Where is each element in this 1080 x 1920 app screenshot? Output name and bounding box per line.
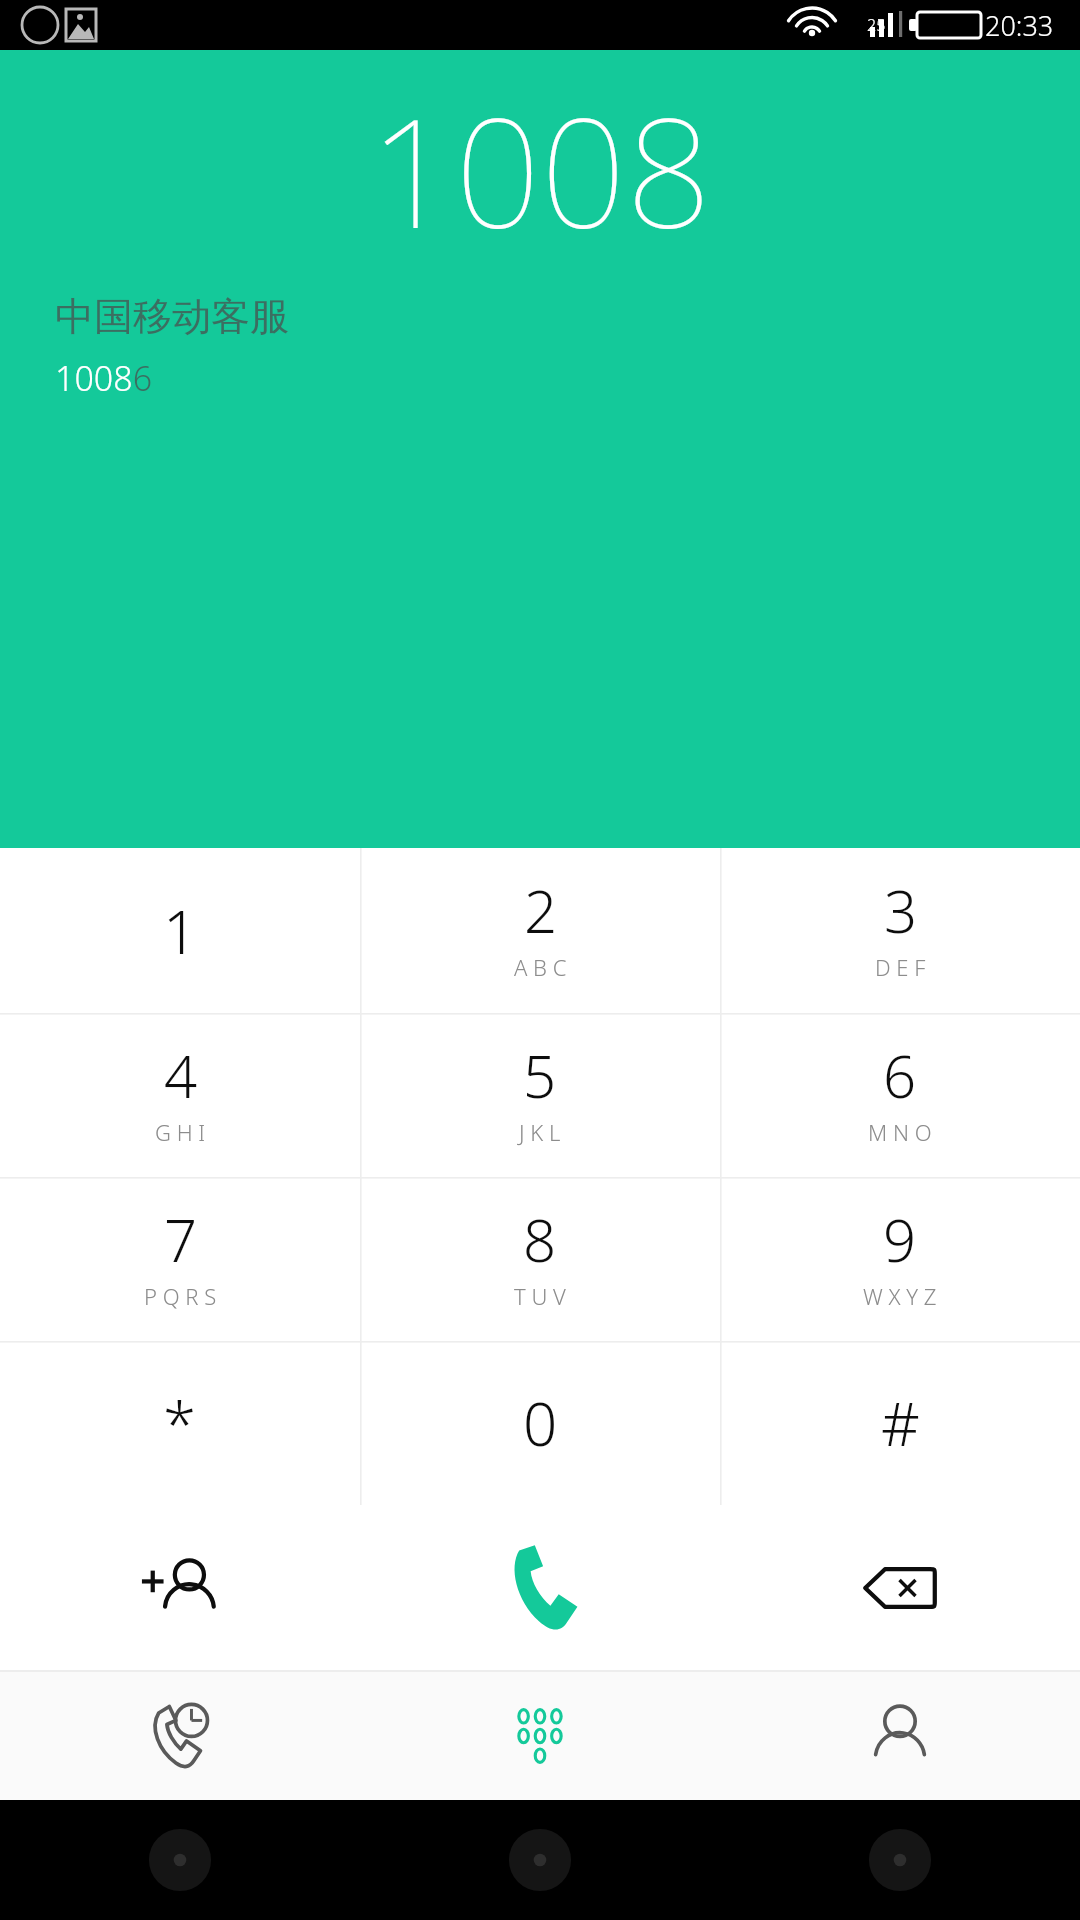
button[interactable]: Backspace <box>720 1505 1080 1670</box>
staticText: 5 <box>523 1036 557 1115</box>
button[interactable]: Add contact <box>0 1505 360 1670</box>
button[interactable]: 3 <box>720 848 1080 1013</box>
button[interactable]: 5 <box>360 1013 720 1177</box>
staticText: 中国移动客服 <box>55 292 289 341</box>
staticText: 8 <box>523 1200 557 1279</box>
staticText: T U V <box>514 1281 566 1311</box>
button[interactable]: 9 <box>720 1177 1080 1341</box>
button[interactable]: * <box>0 1341 360 1505</box>
button[interactable]: 1 <box>0 848 360 1013</box>
staticText: M N O <box>868 1117 932 1147</box>
button[interactable]: Recent calls <box>0 1672 360 1800</box>
staticText: 4 <box>164 1036 198 1115</box>
staticText: 10086 <box>55 355 153 401</box>
button[interactable]: 0 <box>360 1341 720 1505</box>
staticText: 9 <box>883 1200 917 1279</box>
staticText: 6 <box>883 1036 917 1115</box>
staticText: # <box>881 1382 920 1464</box>
button[interactable]: System button <box>0 1800 360 1920</box>
button[interactable]: System button <box>720 1800 1080 1920</box>
button[interactable]: 4 <box>0 1013 360 1177</box>
staticText: 3 <box>884 871 918 950</box>
button[interactable]: 8 <box>360 1177 720 1341</box>
button[interactable]: # <box>720 1341 1080 1505</box>
staticText: A B C <box>514 952 567 982</box>
staticText: D E F <box>875 952 926 982</box>
button[interactable]: Dialpad <box>360 1672 720 1800</box>
staticText: * <box>163 1382 197 1464</box>
staticText: J K L <box>519 1117 561 1147</box>
staticText: G H I <box>155 1117 206 1147</box>
staticText: W X Y Z <box>863 1281 937 1311</box>
button[interactable]: System button <box>360 1800 720 1920</box>
staticText: P Q R S <box>144 1281 217 1311</box>
staticText: 1008 <box>369 68 712 272</box>
button[interactable]: 2 <box>360 848 720 1013</box>
button[interactable]: Contacts <box>720 1672 1080 1800</box>
button[interactable]: 7 <box>0 1177 360 1341</box>
button[interactable]: 6 <box>720 1013 1080 1177</box>
staticText: 25 <box>867 14 886 36</box>
staticText: 20:33 <box>985 7 1054 44</box>
staticText: 1 <box>163 890 198 972</box>
staticText: 7 <box>164 1200 198 1279</box>
button[interactable]: Call <box>360 1505 720 1670</box>
staticText: 0 <box>523 1382 558 1464</box>
staticText: 2 <box>524 871 558 950</box>
